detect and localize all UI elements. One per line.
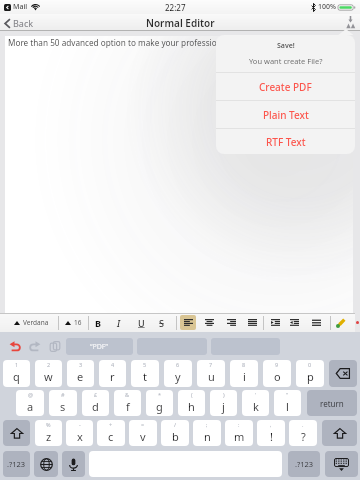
button[interactable]: ' [242,390,269,416]
staticText: Verdana [23,318,49,327]
button[interactable]: Format [200,313,218,332]
staticText: 7 [209,361,213,368]
staticText: u [208,369,215,384]
button[interactable]: - [66,420,93,446]
button[interactable]: 8 [230,360,258,387]
button[interactable]: Undo [6,338,23,355]
staticText: @ [28,391,33,398]
button[interactable]: & [114,390,141,416]
staticText: S [159,317,164,329]
button[interactable]: Format [222,313,240,332]
staticText: n [204,429,211,444]
button[interactable]: Dictate [62,451,85,477]
button[interactable]: Change keyboard [34,451,58,477]
button[interactable]: Backspace [329,360,357,387]
staticText: : [238,421,240,428]
button[interactable]: I [111,313,127,332]
button[interactable]: 3 [67,360,94,387]
button[interactable]: 6 [164,360,192,387]
button[interactable]: ) [210,390,237,416]
button[interactable]: 2 [35,360,62,387]
button[interactable]: Create PDF [216,73,355,100]
staticText: 9 [275,361,279,368]
button[interactable]: Hide keyboard [325,451,358,477]
button[interactable]: 9 [263,360,291,387]
button[interactable]: Highlight [334,313,348,332]
button[interactable]: % [35,420,62,446]
button[interactable]: ( [178,390,205,416]
button[interactable]: + [97,420,125,446]
staticText: x [77,429,83,444]
staticText: ' [255,391,257,398]
button[interactable]: . [289,420,317,446]
button[interactable]: B [90,313,106,332]
staticText: return [320,398,344,409]
button[interactable]: S [153,313,169,332]
staticText: 22:27 [165,2,186,13]
button[interactable]: Back [0,15,40,31]
button[interactable]: : [225,420,253,446]
button[interactable]: 1 [3,360,30,387]
button[interactable]: Shift [3,420,30,446]
staticText: k [253,399,259,414]
button[interactable]: @ [16,390,44,416]
button[interactable]: .?123 [288,451,320,477]
button[interactable]: * [146,390,173,416]
button[interactable]: / [161,420,189,446]
staticText: * [158,391,162,398]
button[interactable]: Format [179,313,197,332]
staticText: # [61,391,65,398]
staticText: .?123 [7,459,26,469]
button[interactable]: return [307,390,357,416]
button[interactable]: U [133,313,149,332]
staticText: a [27,399,34,414]
button[interactable]: Format [307,313,325,332]
button[interactable]: " [274,390,301,416]
staticText: ) [223,391,225,398]
button[interactable]: Format [243,313,261,332]
staticText: m [234,429,245,444]
staticText: w [44,369,53,384]
button[interactable]: Format [266,313,284,332]
button[interactable]: = [129,420,157,446]
staticText: t [143,369,147,384]
button[interactable]: 16 [62,313,85,332]
staticText: 3 [79,361,83,368]
button[interactable]: .?123 [3,451,30,477]
staticText: 100% [318,2,336,12]
staticText: i [243,369,246,384]
button[interactable]: 5 [131,360,159,387]
staticText: Back [13,17,34,29]
button[interactable]: 7 [197,360,225,387]
staticText: £ [94,391,98,398]
button[interactable]: “PDF” [66,338,133,355]
staticText: 6 [176,361,180,368]
button[interactable]: 0 [296,360,324,387]
button[interactable]: 4 [99,360,126,387]
button[interactable]: Redo [26,338,43,355]
button[interactable]: Format [285,313,303,332]
button[interactable]: RTF Text [216,129,355,154]
button[interactable]: , [257,420,285,446]
staticText: v [140,429,146,444]
staticText: o [274,369,281,384]
button[interactable]: # [49,390,77,416]
button[interactable]: Verdana [11,313,52,332]
button[interactable]: Paste [46,338,63,355]
button[interactable]: ; [193,420,221,446]
staticText: Mail [13,2,28,12]
staticText: RTF Text [266,135,306,149]
button[interactable]: Plain Text [216,101,355,128]
staticText: s [60,399,66,414]
staticText: 5 [143,361,147,368]
staticText: % [46,421,51,428]
button[interactable]: £ [82,390,109,416]
button[interactable]: Export [340,14,360,31]
staticText: g [156,399,163,414]
staticText: 2 [47,361,51,368]
button[interactable]: Shift [322,420,357,446]
staticText: Save! [277,41,295,51]
